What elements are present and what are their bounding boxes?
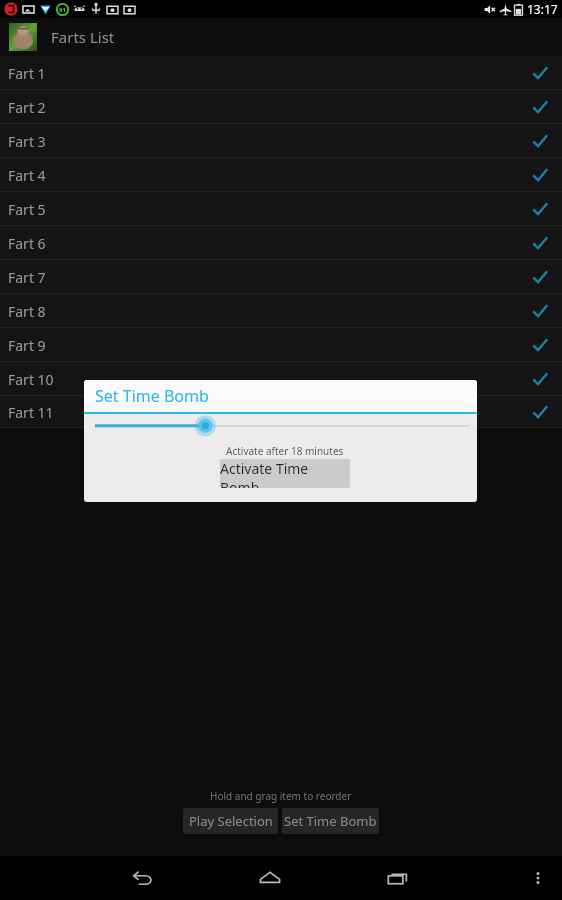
staticText: 13:17 xyxy=(527,1,558,17)
button[interactable]: Fart 7 xyxy=(0,260,562,294)
button[interactable]: Recent apps xyxy=(358,856,438,900)
button[interactable]: Farts List xyxy=(0,18,562,56)
staticText: Set Time Bomb xyxy=(95,385,209,407)
button[interactable]: Fart 2 xyxy=(0,90,562,124)
staticText: 91 xyxy=(59,6,66,14)
staticText: Fart 3 xyxy=(8,132,46,151)
button[interactable]: Fart 1 xyxy=(0,56,562,90)
button[interactable]: Fart 5 xyxy=(0,192,562,226)
staticText: Fart 2 xyxy=(8,98,46,117)
button[interactable]: Activate Time Bomb xyxy=(220,459,350,488)
button[interactable]: Fart 6 xyxy=(0,226,562,260)
staticText: Fart 6 xyxy=(8,234,46,253)
button[interactable]: Back xyxy=(103,856,182,900)
staticText: Fart 7 xyxy=(8,268,46,287)
staticText: Fart 4 xyxy=(8,166,46,185)
button[interactable]: Time bomb delay slider xyxy=(84,414,477,442)
staticText: Farts List xyxy=(51,27,115,47)
staticText: Activate Time Bomb xyxy=(220,459,350,488)
staticText: Play Selection xyxy=(189,812,273,830)
staticText: Set Time Bomb xyxy=(284,812,377,830)
button[interactable]: Fart 10 xyxy=(0,362,562,396)
button[interactable]: More options xyxy=(518,856,558,900)
staticText: Fart 9 xyxy=(8,336,46,355)
staticText: Activate after 18 minutes xyxy=(226,444,344,458)
button[interactable]: Play Selection xyxy=(183,808,278,834)
staticText: Fart 5 xyxy=(8,200,46,219)
staticText: Fart 10 xyxy=(8,370,54,389)
staticText: Hold and grag item to reorder xyxy=(210,789,352,803)
button[interactable]: Fart 9 xyxy=(0,328,562,362)
button[interactable]: Fart 8 xyxy=(0,294,562,328)
button[interactable]: Set Time Bomb xyxy=(282,808,379,834)
button[interactable]: Fart 11 xyxy=(0,396,562,428)
staticText: Fart 1 xyxy=(8,64,46,83)
staticText: Fart 8 xyxy=(8,302,46,321)
button[interactable]: Fart 3 xyxy=(0,124,562,158)
staticText: Fart 11 xyxy=(8,403,54,422)
button[interactable]: Home xyxy=(230,856,310,900)
button[interactable]: Fart 4 xyxy=(0,158,562,192)
